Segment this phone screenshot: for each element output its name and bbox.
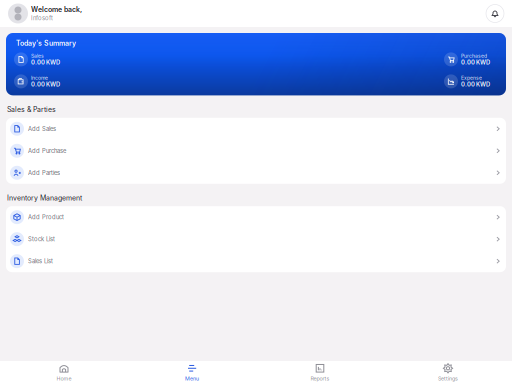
button[interactable]: Notifications: [486, 4, 504, 22]
button[interactable]: Stock List: [6, 228, 506, 250]
button[interactable]: Add Purchase: [6, 140, 506, 162]
staticText: 0.00 KWD: [31, 59, 60, 66]
staticText: Add Parties: [28, 169, 60, 176]
staticText: Infosoft: [31, 15, 53, 22]
button[interactable]: Add Parties: [6, 162, 506, 184]
staticText: 0.00 KWD: [461, 81, 490, 88]
staticText: Settings: [438, 375, 458, 382]
button[interactable]: Reports: [256, 361, 384, 384]
staticText: Reports: [310, 375, 329, 382]
button[interactable]: Menu: [128, 361, 256, 384]
staticText: 0.00 KWD: [31, 81, 60, 88]
staticText: Sales List: [28, 258, 53, 265]
staticText: Home: [56, 375, 71, 382]
button[interactable]: Home: [0, 361, 128, 384]
staticText: Add Purchase: [28, 147, 66, 154]
button[interactable]: Settings: [384, 361, 512, 384]
staticText: Menu: [185, 375, 199, 382]
staticText: Income: [31, 75, 48, 81]
staticText: Inventory Management: [7, 194, 82, 202]
staticText: Today's Summary: [16, 39, 76, 47]
staticText: Sales & Parties: [7, 105, 56, 114]
staticText: 0.00 KWD: [461, 59, 490, 66]
staticText: Expense: [461, 75, 482, 81]
staticText: Stock List: [28, 236, 55, 243]
staticText: Purchased: [461, 53, 487, 59]
staticText: Sales: [31, 53, 44, 59]
staticText: Add Sales: [28, 125, 56, 132]
staticText: Welcome back,: [31, 5, 82, 14]
button[interactable]: Sales List: [6, 250, 506, 272]
staticText: Add Product: [28, 214, 64, 221]
button[interactable]: Add Sales: [6, 118, 506, 140]
button[interactable]: Add Product: [6, 206, 506, 228]
